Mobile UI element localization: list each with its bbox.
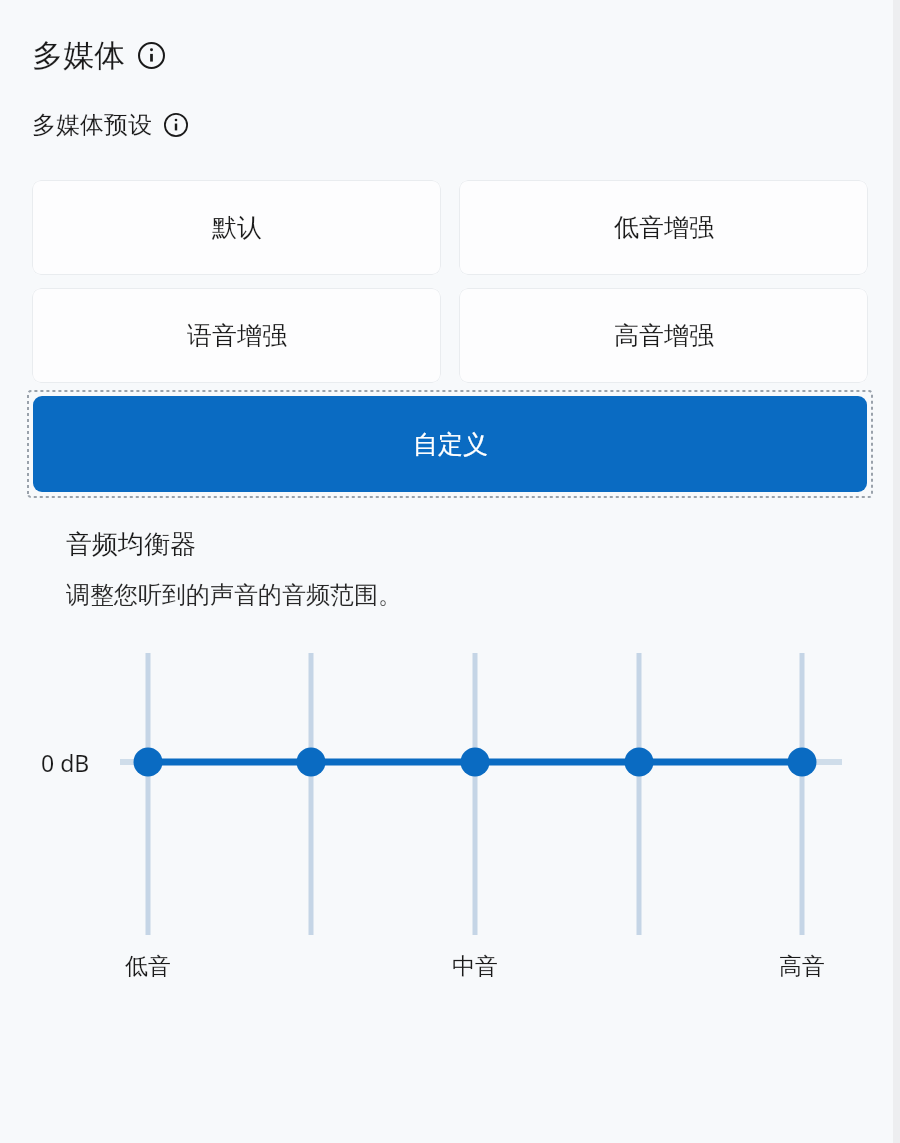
button[interactable]: 多媒体: [32, 36, 165, 75]
button[interactable]: 低音增强: [459, 180, 868, 275]
staticText: 低音: [106, 952, 190, 981]
staticText: 高音增强: [614, 320, 714, 351]
staticText: 语音增强: [187, 320, 287, 351]
staticText: 音频均衡器: [66, 528, 196, 561]
staticText: 高音: [760, 952, 844, 981]
button[interactable]: 语音增强: [32, 288, 441, 383]
staticText: 0 dB: [41, 747, 90, 778]
button[interactable]: 多媒体预设: [32, 110, 188, 140]
button[interactable]: 默认: [32, 180, 441, 275]
button[interactable]: 自定义: [33, 396, 867, 492]
staticText: 低音增强: [614, 212, 714, 243]
staticText: 中音: [433, 952, 517, 981]
staticText: 自定义: [413, 429, 488, 460]
staticText: 多媒体预设: [32, 110, 152, 140]
button[interactable]: 高音增强: [459, 288, 868, 383]
staticText: 多媒体: [32, 36, 125, 75]
other: Audio equalizer bands: [0, 640, 900, 950]
staticText: 调整您听到的声音的音频范围。: [66, 580, 402, 610]
staticText: 默认: [212, 212, 262, 243]
other: Information: [138, 42, 165, 69]
other: Information: [164, 113, 188, 137]
